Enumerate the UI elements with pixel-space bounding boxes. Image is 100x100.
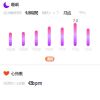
staticText: 4.8時間 (25, 10, 38, 16)
button[interactable]: 週間 (45, 56, 54, 61)
staticText: 7.0 (73, 18, 78, 23)
staticText: 11/1 (59, 47, 66, 52)
staticText: 睡眠 (11, 2, 19, 7)
staticText: 合計睡眠時間 (3, 11, 21, 15)
staticText: 11/3 (85, 47, 92, 52)
staticText: 10/28 (6, 47, 15, 52)
staticText: 睡眠スコア (42, 11, 60, 15)
staticText: 週間 (47, 57, 53, 61)
staticText: 73点 (63, 10, 71, 16)
staticText: 10/30 (32, 47, 41, 52)
staticText: 43bpm (28, 80, 42, 86)
staticText: 10/31 (45, 47, 54, 52)
staticText: 10/29 (19, 47, 28, 52)
staticText: 心拍数 (11, 71, 23, 76)
staticText: 平均 (79, 11, 85, 15)
staticText: 11/2 (72, 47, 79, 52)
staticText: 休憩時の心拍数 (3, 81, 25, 85)
